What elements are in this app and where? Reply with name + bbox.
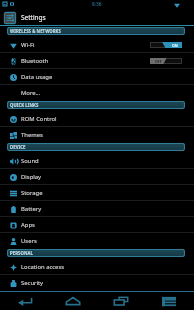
button[interactable]: Battery (0, 201, 194, 217)
button[interactable]: Sound (0, 153, 194, 169)
staticText: ON (172, 43, 178, 48)
button[interactable]: Bluetooth off (150, 58, 182, 64)
staticText: OFF (155, 59, 162, 64)
staticText: Bluetooth (21, 57, 49, 65)
staticText: Sound (21, 157, 39, 165)
button[interactable]: Apps (0, 217, 194, 233)
staticText: Battery (21, 205, 42, 213)
button[interactable]: Security (0, 275, 194, 291)
staticText: Themes (21, 131, 43, 139)
staticText: More... (21, 89, 41, 97)
staticText: Display (21, 173, 42, 181)
staticText: WIRELESS & NETWORKS (10, 28, 61, 34)
staticText: Storage (21, 189, 43, 197)
button[interactable]: Bluetooth (0, 53, 194, 69)
staticText: Security (21, 279, 44, 287)
button[interactable]: ROM Control (0, 111, 194, 127)
staticText: Data usage (21, 73, 53, 81)
button[interactable]: Back (2, 292, 48, 310)
staticText: Settings (21, 13, 46, 22)
button[interactable]: Wi-Fi (0, 37, 194, 53)
button[interactable]: Display (0, 169, 194, 185)
button[interactable]: Wi-Fi on (150, 42, 182, 48)
button[interactable]: Home (50, 292, 96, 310)
staticText: DEVICE (10, 144, 26, 150)
button[interactable]: Settings (4, 12, 16, 24)
button[interactable]: Users (0, 233, 194, 249)
button[interactable]: Themes (0, 127, 194, 143)
button[interactable]: Storage (0, 185, 194, 201)
staticText: 8:36 (92, 1, 102, 8)
button[interactable]: More... (0, 85, 194, 101)
staticText: Users (21, 237, 37, 245)
button[interactable]: Location access (0, 259, 194, 275)
button[interactable]: Recent apps (98, 292, 144, 310)
staticText: QUICK LINKS (10, 102, 39, 108)
staticText: ROM Control (21, 115, 57, 123)
staticText: PERSONAL (10, 250, 33, 256)
button[interactable]: Data usage (0, 69, 194, 85)
staticText: Location access (21, 263, 65, 271)
staticText: Wi-Fi (21, 41, 35, 49)
staticText: Apps (21, 221, 35, 229)
button[interactable]: Menu (146, 292, 192, 310)
